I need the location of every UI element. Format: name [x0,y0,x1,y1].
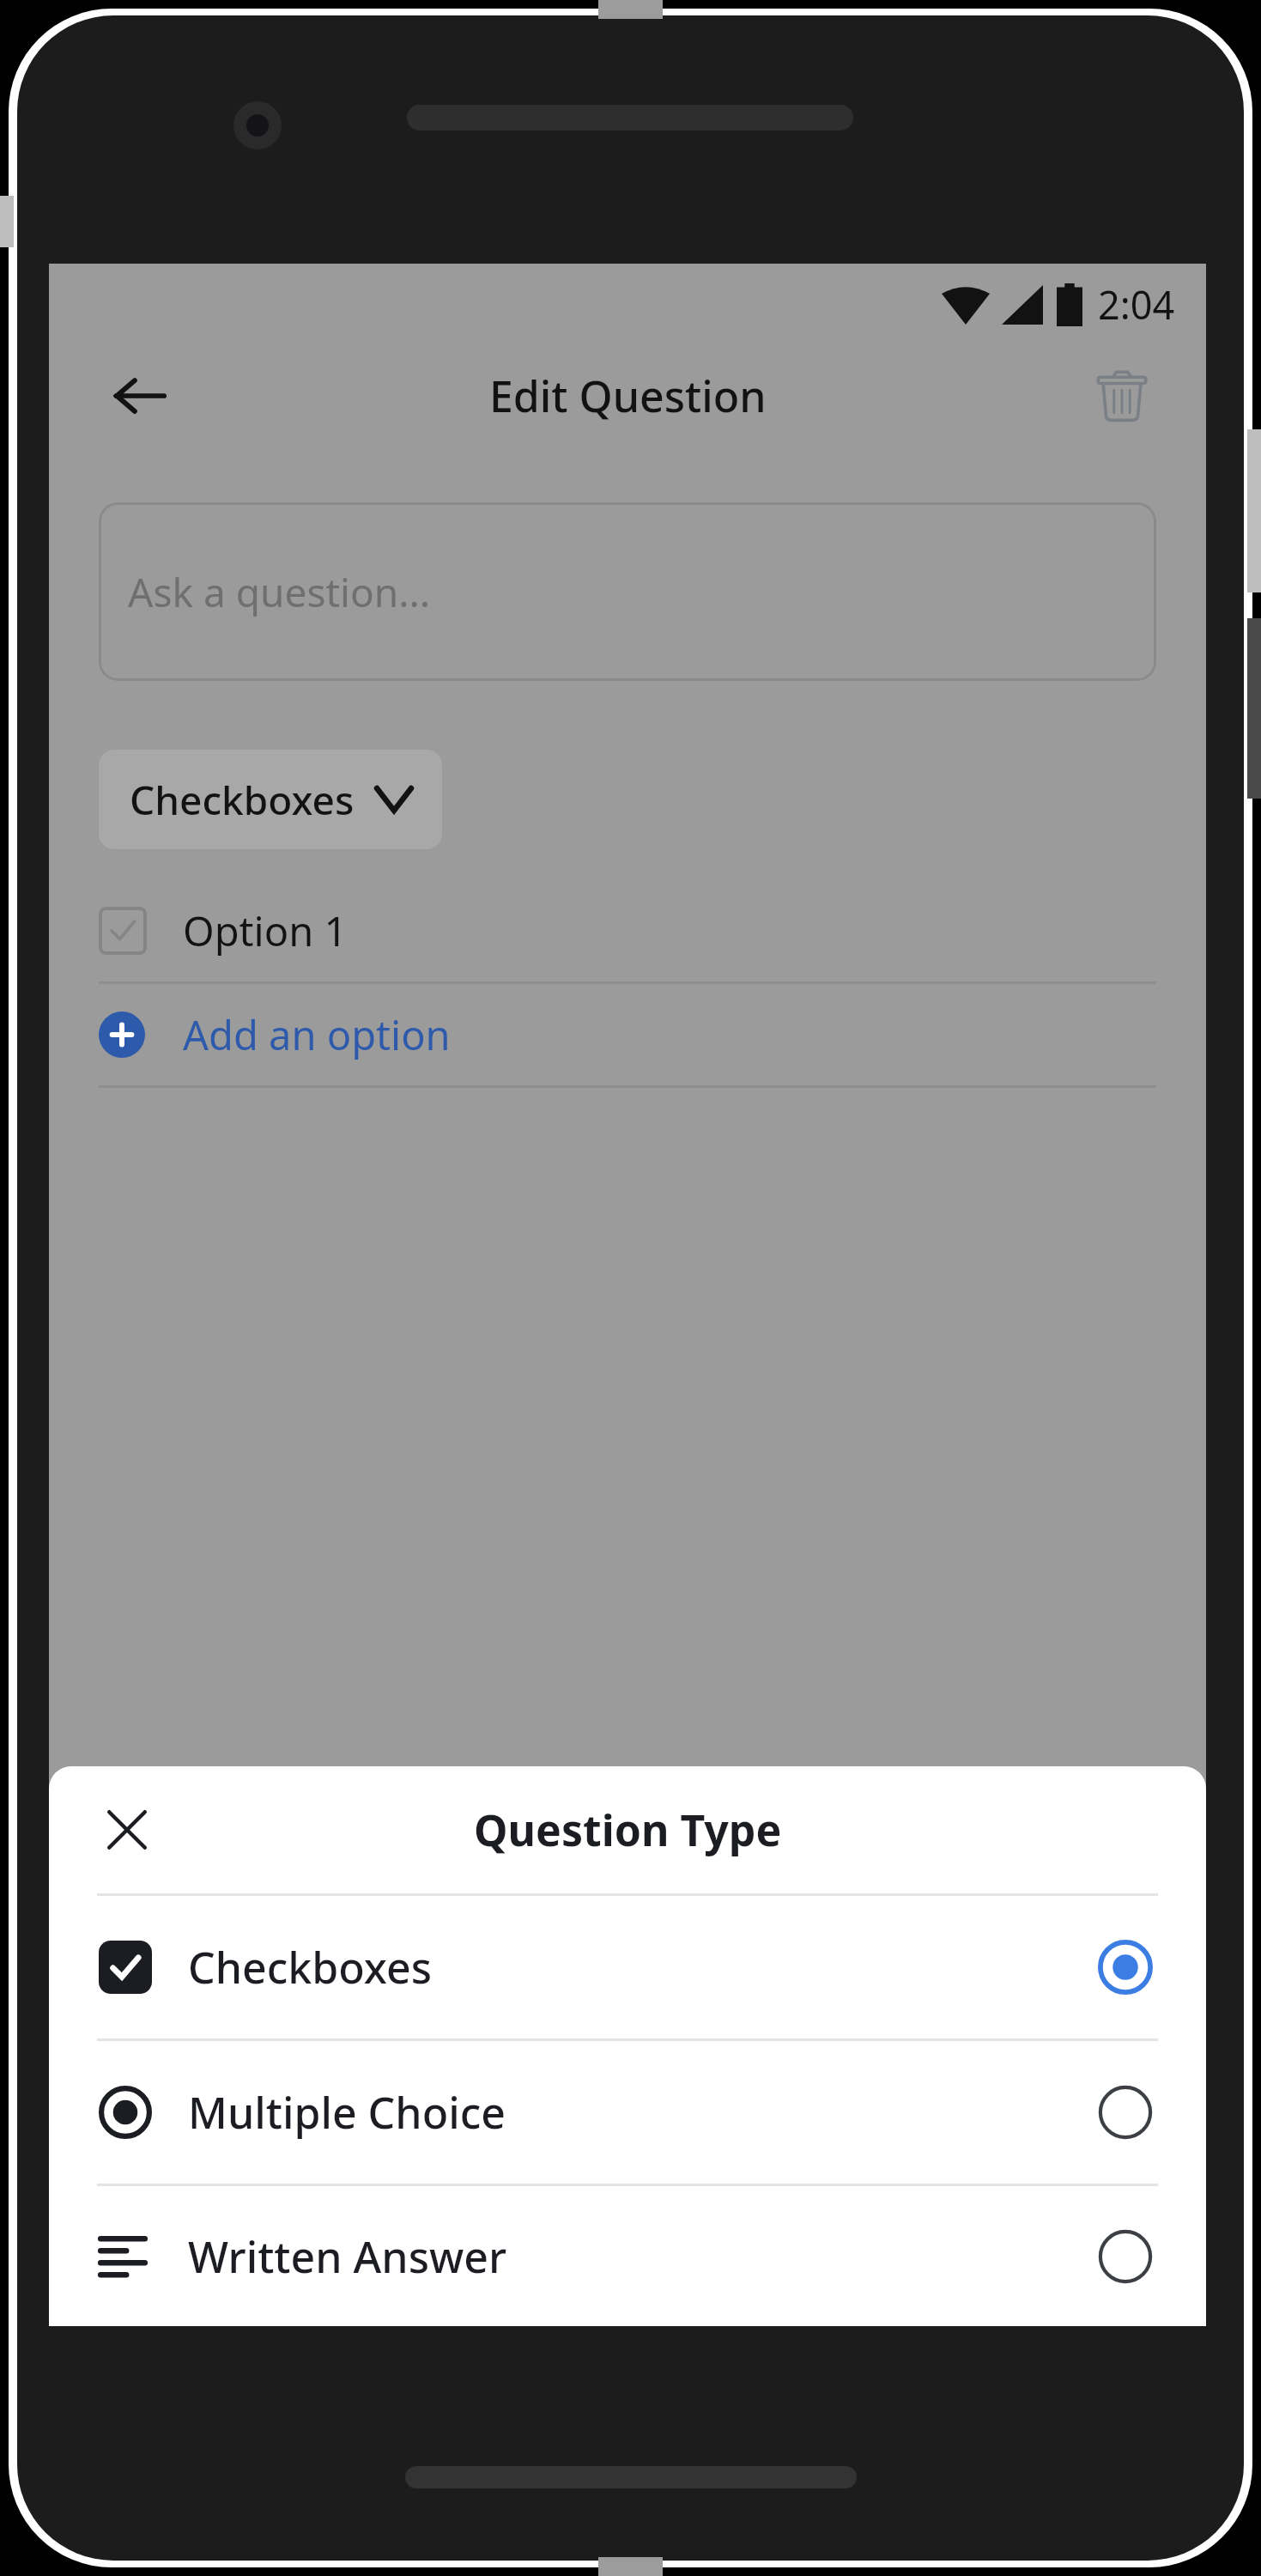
staticText: Multiple Choice [188,2083,506,2142]
button[interactable]: Written Answer [49,2186,1206,2326]
button[interactable]: Checkboxes [49,1896,1206,2038]
staticText: Checkboxes [188,1938,432,1996]
button[interactable]: Delete question [1081,355,1163,437]
staticText: Checkboxes [130,773,355,827]
staticText: Written Answer [188,2227,507,2286]
staticText: Edit Question [489,367,767,425]
staticText: Question Type [474,1801,782,1859]
staticText: Ask a question... [128,565,431,619]
staticText: Add an option [183,1007,451,1062]
button[interactable]: Multiple Choice [49,2041,1206,2184]
button[interactable]: Back [99,355,181,437]
staticText: Option 1 [183,903,348,958]
button[interactable]: Add an option [99,984,1156,1085]
button[interactable]: Checkboxes [99,750,442,849]
button[interactable]: Option 1 [99,880,1156,981]
button[interactable]: Close [88,1791,166,1868]
staticText: 2:04 [1098,278,1175,331]
button[interactable]: Ask a question... [99,502,1156,681]
